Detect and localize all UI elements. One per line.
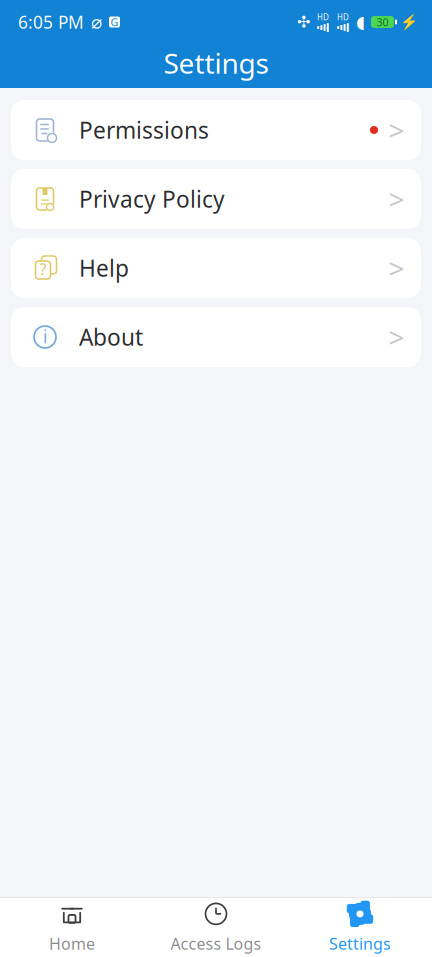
button[interactable]: i bbox=[11, 307, 421, 367]
staticText: > bbox=[388, 111, 404, 149]
staticText: Settings bbox=[163, 44, 268, 82]
staticText: HD bbox=[317, 12, 329, 22]
staticText: ? bbox=[39, 258, 46, 280]
staticText: Settings bbox=[329, 933, 391, 954]
button[interactable]: ? bbox=[11, 238, 421, 298]
staticText: About bbox=[79, 322, 143, 352]
staticText: HD bbox=[337, 12, 349, 22]
staticText: 6:05 PM bbox=[18, 10, 84, 33]
staticText: ⚡ bbox=[400, 14, 418, 30]
staticText: > bbox=[388, 318, 404, 356]
button[interactable]: Privacy Policy bbox=[11, 169, 421, 229]
staticText: ✣ bbox=[297, 13, 310, 31]
staticText: i bbox=[43, 325, 47, 348]
staticText: ◖ bbox=[356, 12, 365, 32]
staticText: Access Logs bbox=[170, 933, 261, 954]
staticText: Home bbox=[49, 933, 95, 954]
button[interactable]: Settings bbox=[288, 898, 432, 957]
staticText: ⌀ bbox=[91, 11, 102, 33]
button[interactable]: Access Logs bbox=[144, 898, 288, 957]
staticText: > bbox=[388, 249, 404, 287]
staticText: > bbox=[388, 180, 404, 218]
staticText: Privacy Policy bbox=[79, 184, 225, 214]
button[interactable]: Home bbox=[0, 898, 144, 957]
staticText: Permissions bbox=[79, 115, 209, 145]
staticText: Help bbox=[79, 253, 129, 283]
button[interactable]: Permissions bbox=[11, 100, 421, 160]
staticText: 30 bbox=[376, 15, 388, 29]
staticText: G bbox=[110, 15, 118, 29]
